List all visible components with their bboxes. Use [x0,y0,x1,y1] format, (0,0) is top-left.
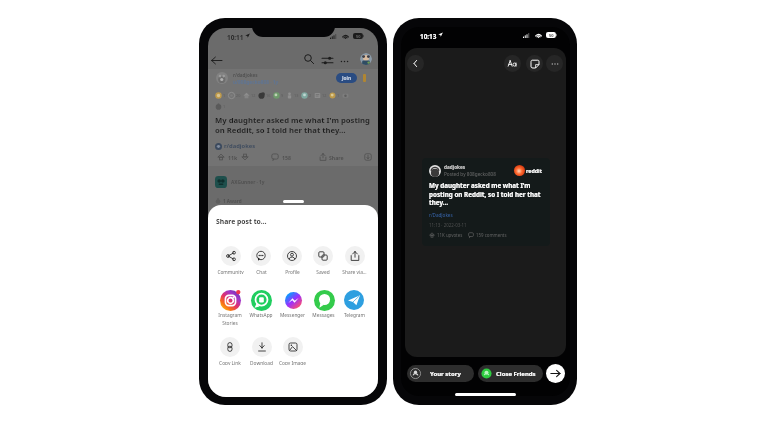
staticText: r/dadjokes [224,142,256,150]
staticText: Posted by 808gecko808 [444,171,496,177]
staticText: dadjokes [444,164,466,170]
staticText: 158 [282,154,291,161]
button[interactable]: Search [303,53,315,65]
staticText: Profile [285,269,300,274]
staticText: 159 comments [476,232,507,238]
button[interactable]: Save [364,153,372,161]
button[interactable]: 158 [271,153,291,161]
button[interactable]: Chat [245,246,277,274]
staticText: Telegram [344,312,365,319]
staticText: WhatsApp [249,312,273,319]
button[interactable]: Copy Link [214,337,246,365]
staticText: r/dadjokes [233,72,258,78]
button[interactable]: Community [214,246,246,274]
staticText: My daughter asked me what I'm posting on… [429,181,543,207]
staticText: Copy Image [279,360,306,365]
staticText: 2 [309,93,312,98]
button[interactable]: r/dadjokes [215,142,256,150]
staticText: Instagram Stories [218,312,242,326]
button[interactable]: Send [546,364,565,383]
button[interactable]: Your story [407,365,474,382]
staticText: 1 [223,93,226,98]
button[interactable]: WhatsApp [245,289,277,329]
staticText: Share [329,154,344,161]
staticText: Copy Link [219,360,241,365]
button[interactable]: Instagram Stories [214,289,246,329]
button[interactable]: Messages [307,289,339,329]
staticText: reddit [526,167,543,174]
staticText: 1 [337,93,340,98]
button[interactable]: Text [504,55,521,72]
staticText: 9 [281,93,284,98]
button[interactable]: Share via… [338,246,370,274]
staticText: Share via… [342,269,367,274]
staticText: u/808gecko808 · 1y [233,79,279,86]
staticText: Your story [430,370,461,378]
button[interactable]: 11k [217,153,249,161]
staticText: 50 [549,33,554,38]
staticText: 10:13 [420,32,437,41]
staticText: Share post to… [216,217,267,226]
button[interactable]: Telegram [338,289,370,329]
staticText: 20 [236,93,241,98]
staticText: Messenger [280,312,305,319]
staticText: 50 [356,34,361,39]
staticText: 1 Award [223,198,242,204]
button[interactable]: Close Friends [478,365,543,382]
button[interactable]: Sort [321,54,333,66]
staticText: 12 [251,93,256,98]
button[interactable]: Messenger [276,289,308,329]
button[interactable]: More options [338,55,350,67]
staticText: 11:13 · 2022-03-11 [429,222,467,228]
staticText: Close Friends [496,370,536,378]
button[interactable]: Profile [360,53,372,65]
staticText: Messages [312,312,335,319]
staticText: AXGunner · 1y [231,179,265,186]
button[interactable]: Back [407,55,424,72]
button[interactable]: Download [245,337,277,365]
staticText: Community [217,269,244,274]
staticText: 11k [228,154,238,161]
staticText: My daughter asked me what I'm posting on… [215,115,373,135]
button[interactable]: Share [319,153,344,161]
button[interactable]: Copy Image [276,337,308,365]
button[interactable]: Profile [276,246,308,274]
staticText: 12 [322,93,327,98]
staticText: 16 [266,93,271,98]
staticText: Download [250,360,273,365]
button[interactable]: Back [211,54,222,66]
staticText: 11K upvotes [437,232,463,238]
staticText: 1 [223,104,226,109]
button[interactable]: More options [546,55,563,72]
button[interactable]: Join [336,73,357,83]
staticText: Saved [316,269,330,274]
staticText: r/DadJokes [429,212,453,218]
staticText: Chat [256,269,267,274]
button[interactable]: Stickers [526,55,543,72]
staticText: 10:11 [227,33,244,42]
staticText: Join [342,75,352,82]
button[interactable]: Saved [307,246,339,274]
staticText: 13 [294,93,299,98]
